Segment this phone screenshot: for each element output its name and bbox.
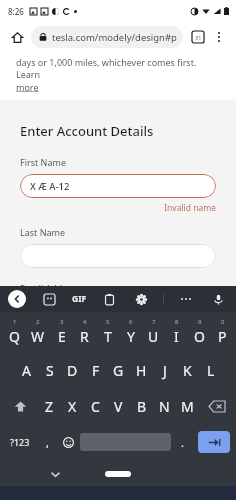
staticText: H <box>136 361 147 380</box>
staticText: ?123 <box>10 436 30 448</box>
staticText: , <box>46 435 49 450</box>
button[interactable]: M <box>176 388 199 424</box>
button[interactable]: Settings <box>131 289 151 309</box>
button[interactable]: , <box>37 424 57 460</box>
staticText: C <box>91 397 100 416</box>
button[interactable]: Shift <box>2 388 38 424</box>
staticText: Invalid name <box>20 202 216 214</box>
button[interactable]: Home <box>7 27 27 47</box>
button[interactable]: Next <box>198 431 230 453</box>
staticText: F <box>92 361 100 380</box>
staticText: A <box>22 361 31 380</box>
button[interactable]: V <box>107 388 130 424</box>
staticText: X <box>68 397 77 416</box>
staticText: Enter Account Details <box>20 122 154 140</box>
staticText: L <box>207 361 215 380</box>
button[interactable]: C <box>84 388 107 424</box>
staticText: K <box>183 361 192 380</box>
button[interactable]: Voice input <box>208 289 228 309</box>
button[interactable]: 1 <box>2 312 26 352</box>
staticText: 8 <box>175 318 179 326</box>
button[interactable]: Calendar <box>187 26 209 48</box>
button[interactable]: X Æ A-12 <box>20 174 216 198</box>
staticText: W <box>31 327 45 346</box>
button[interactable]: More options <box>209 27 229 47</box>
staticText: S <box>46 361 54 380</box>
staticText: days or 1,000 miles, whichever comes fir… <box>16 56 220 81</box>
button[interactable]: Home <box>105 471 131 477</box>
staticText: tesla.com/modely/design#p <box>52 31 177 44</box>
button[interactable]: G <box>107 352 130 388</box>
button[interactable]: H <box>130 352 153 388</box>
staticText: M <box>181 397 194 416</box>
button[interactable]: L <box>199 352 222 388</box>
staticText: 0 <box>221 318 225 326</box>
button[interactable]: J <box>153 352 176 388</box>
button[interactable]: F <box>84 352 107 388</box>
button[interactable]: GIF <box>72 289 87 309</box>
staticText: U <box>148 327 159 346</box>
staticText: . <box>181 435 184 450</box>
staticText: Y <box>127 327 135 346</box>
staticText: Q <box>9 327 20 346</box>
staticText: 7 <box>152 318 156 326</box>
button[interactable]: Z <box>38 388 61 424</box>
button[interactable]: K <box>176 352 199 388</box>
button[interactable]: 9 <box>188 312 211 352</box>
staticText: T <box>104 327 112 346</box>
button[interactable]: 0 <box>211 312 234 352</box>
staticText: V <box>114 397 123 416</box>
button[interactable]: Back <box>8 290 26 308</box>
button[interactable]: D <box>61 352 84 388</box>
staticText: B <box>137 397 147 416</box>
staticText: 2 <box>36 318 40 326</box>
staticText: I <box>174 327 179 346</box>
button[interactable]: Backspace <box>199 388 234 424</box>
staticText: 3 <box>60 318 64 326</box>
button[interactable]: Hide keyboard <box>46 465 64 483</box>
staticText: 9 <box>198 318 202 326</box>
staticText: 8:26 <box>8 6 24 17</box>
button[interactable]: More <box>176 289 196 309</box>
staticText: N <box>159 397 170 416</box>
staticText: 1 <box>13 318 17 326</box>
button[interactable]: 4 <box>73 312 96 352</box>
staticText: Email Address <box>20 282 80 286</box>
button[interactable]: more <box>16 81 39 93</box>
staticText: P <box>218 327 227 346</box>
staticText: 4 <box>83 318 87 326</box>
button[interactable]: 7 <box>142 312 165 352</box>
button[interactable]: 3 <box>50 312 73 352</box>
button[interactable]: N <box>153 388 176 424</box>
staticText: G <box>113 361 124 380</box>
staticText: O <box>194 327 205 346</box>
button[interactable]: 8 <box>165 312 188 352</box>
staticText: First Name <box>20 156 66 168</box>
staticText: Z <box>45 397 54 416</box>
staticText: R <box>80 327 89 346</box>
button[interactable]: Clipboard <box>99 289 119 309</box>
button[interactable]: tesla.com/modely/design#p <box>31 26 183 48</box>
staticText: 5 <box>106 318 110 326</box>
button[interactable]: . <box>171 424 194 460</box>
button[interactable]: X <box>61 388 84 424</box>
button[interactable]: Emoji <box>57 424 80 460</box>
button[interactable]: 6 <box>119 312 142 352</box>
staticText: J <box>163 361 167 380</box>
button[interactable]: A <box>15 352 38 388</box>
staticText: 31 <box>195 34 202 41</box>
staticText: Last Name <box>20 226 66 238</box>
staticText: 6 <box>129 318 133 326</box>
button[interactable]: 5 <box>96 312 119 352</box>
staticText: X Æ A-12 <box>30 180 70 193</box>
button[interactable]: 2 <box>26 312 50 352</box>
staticText: E <box>58 327 66 346</box>
button[interactable]: S <box>38 352 61 388</box>
button[interactable]: ?123 <box>2 424 37 460</box>
button[interactable]: B <box>130 388 153 424</box>
button[interactable]: Stickers <box>39 289 59 309</box>
staticText: D <box>67 361 78 380</box>
button[interactable] <box>20 244 216 268</box>
staticText: GIF <box>72 293 87 305</box>
